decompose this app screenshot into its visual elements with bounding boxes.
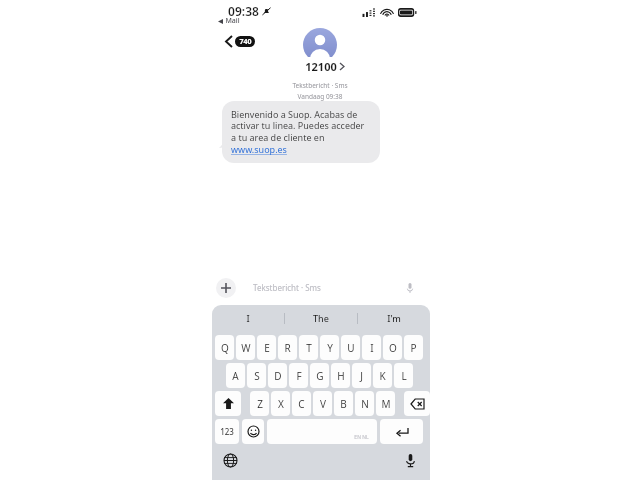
staticText: S bbox=[254, 369, 260, 383]
staticText: L bbox=[401, 369, 407, 383]
staticText: G bbox=[316, 369, 324, 383]
button[interactable]: O bbox=[383, 335, 402, 360]
staticText: I'm bbox=[387, 312, 401, 324]
button[interactable]: I bbox=[362, 335, 381, 360]
staticText: Q bbox=[221, 341, 229, 355]
button[interactable]: Backspace bbox=[404, 391, 430, 416]
button[interactable]: V bbox=[313, 391, 332, 416]
button[interactable]: E bbox=[257, 335, 276, 360]
staticText: Tekstbericht · Sms bbox=[253, 282, 321, 293]
button[interactable]: The bbox=[285, 305, 357, 331]
staticText: V bbox=[320, 397, 326, 411]
button[interactable]: B bbox=[334, 391, 353, 416]
button[interactable]: Q bbox=[215, 335, 234, 360]
button[interactable]: U bbox=[341, 335, 360, 360]
button[interactable]: C bbox=[292, 391, 311, 416]
staticText: P bbox=[410, 341, 417, 355]
button[interactable]: T bbox=[299, 335, 318, 360]
button[interactable]: P bbox=[404, 335, 423, 360]
staticText: R bbox=[284, 341, 291, 355]
button[interactable]: M bbox=[376, 391, 395, 416]
button[interactable]: Y bbox=[320, 335, 339, 360]
button[interactable]: Z bbox=[250, 391, 269, 416]
button[interactable]: 12100 bbox=[298, 57, 351, 76]
staticText: M bbox=[381, 397, 391, 411]
staticText: U bbox=[347, 341, 355, 355]
button[interactable]: H bbox=[331, 363, 350, 388]
button[interactable]: Space bbox=[267, 419, 377, 444]
staticText: Mail bbox=[225, 16, 240, 26]
button[interactable]: Bienvenido a Suop. Acabas de activar tu … bbox=[222, 101, 380, 163]
staticText: B bbox=[340, 397, 347, 411]
button[interactable]: Back, 740 unread bbox=[218, 30, 262, 52]
staticText: Z bbox=[257, 397, 263, 411]
staticText: 740 bbox=[239, 37, 252, 47]
staticText: 123 bbox=[220, 426, 234, 437]
staticText: X bbox=[278, 397, 284, 411]
button[interactable]: Shift bbox=[215, 391, 241, 416]
button[interactable]: K bbox=[373, 363, 392, 388]
staticText: 12100 bbox=[305, 59, 337, 74]
other: Dictate bbox=[407, 283, 413, 293]
staticText: C bbox=[298, 397, 305, 411]
button[interactable]: N bbox=[355, 391, 374, 416]
staticText: H bbox=[337, 369, 345, 383]
button[interactable]: A bbox=[226, 363, 245, 388]
button[interactable]: G bbox=[310, 363, 329, 388]
button[interactable]: S bbox=[247, 363, 266, 388]
button[interactable]: Contact avatar bbox=[303, 28, 337, 62]
staticText: Y bbox=[327, 341, 333, 355]
staticText: The bbox=[313, 312, 329, 324]
staticText: E bbox=[264, 341, 270, 355]
staticText: I bbox=[246, 312, 250, 324]
button[interactable]: I bbox=[212, 305, 284, 331]
staticText: N bbox=[361, 397, 369, 411]
button[interactable]: Emoji bbox=[242, 419, 264, 444]
staticText: W bbox=[241, 341, 251, 355]
button[interactable]: 123 bbox=[215, 419, 239, 444]
staticText: EN NL bbox=[354, 434, 369, 441]
staticText: I bbox=[370, 341, 374, 355]
button[interactable]: R bbox=[278, 335, 297, 360]
button[interactable]: Return bbox=[380, 419, 423, 444]
button[interactable]: Dictation bbox=[402, 452, 418, 468]
button[interactable]: D bbox=[268, 363, 287, 388]
staticText: K bbox=[379, 369, 386, 383]
staticText: J bbox=[360, 369, 363, 383]
button[interactable]: J bbox=[352, 363, 371, 388]
staticText: D bbox=[274, 369, 282, 383]
staticText: A bbox=[232, 369, 239, 383]
staticText: Vandaag 09:38 bbox=[297, 92, 343, 101]
staticText: F bbox=[296, 369, 302, 383]
button[interactable]: Change keyboard bbox=[222, 452, 238, 468]
button[interactable]: Add attachment bbox=[216, 278, 236, 298]
button[interactable]: L bbox=[394, 363, 413, 388]
button[interactable]: F bbox=[289, 363, 308, 388]
staticText: 09:38 bbox=[228, 3, 259, 19]
staticText: T bbox=[306, 341, 312, 355]
button[interactable]: Tekstbericht · Sms bbox=[243, 277, 421, 298]
staticText: Bienvenido a Suop. Acabas de activar tu … bbox=[231, 108, 371, 156]
staticText: O bbox=[389, 341, 397, 355]
staticText: Tekstbericht · Sms bbox=[292, 81, 348, 90]
button[interactable]: I'm bbox=[358, 305, 430, 331]
button[interactable]: X bbox=[271, 391, 290, 416]
button[interactable]: W bbox=[236, 335, 255, 360]
